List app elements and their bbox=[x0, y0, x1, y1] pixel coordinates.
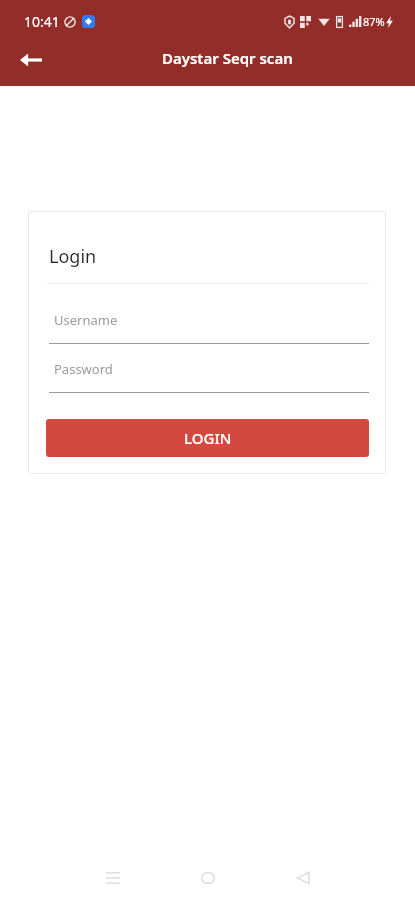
staticText: Password bbox=[54, 360, 113, 378]
staticText: 10:41 bbox=[24, 12, 60, 31]
staticText: Login bbox=[49, 244, 97, 269]
button[interactable]: Back bbox=[281, 856, 325, 900]
staticText: 87% bbox=[363, 14, 385, 29]
button[interactable]: Back bbox=[9, 38, 53, 82]
button[interactable]: LOGIN bbox=[46, 419, 369, 457]
staticText: LOGIN bbox=[184, 428, 232, 448]
button[interactable]: Home bbox=[186, 856, 230, 900]
staticText: Username bbox=[54, 311, 118, 329]
staticText: Daystar Seqr scan bbox=[162, 48, 293, 68]
button[interactable]: Recent apps bbox=[91, 856, 135, 900]
